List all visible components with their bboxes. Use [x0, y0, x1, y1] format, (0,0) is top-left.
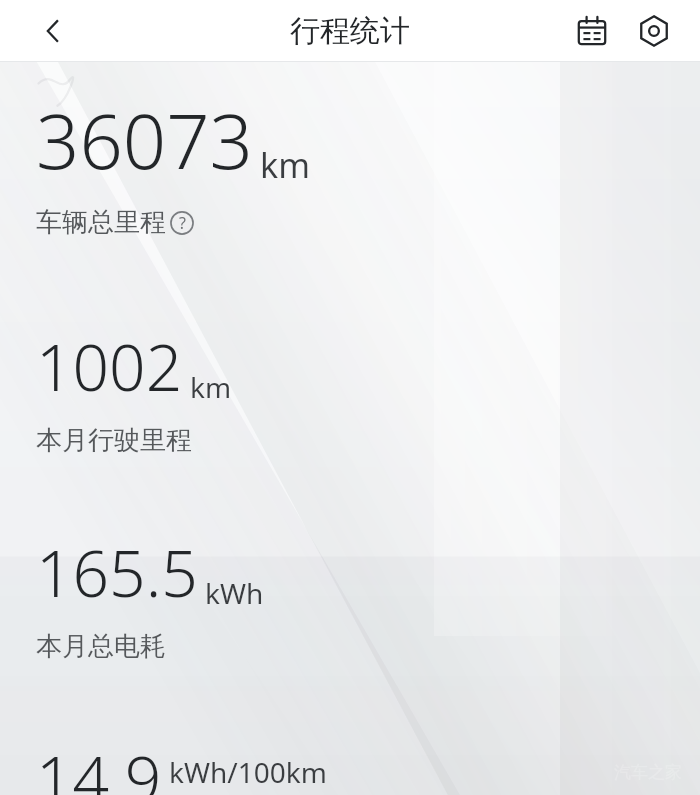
- staticText: 行程统计: [290, 12, 410, 50]
- button[interactable]: 说明: [169, 210, 195, 236]
- staticText: 36073: [36, 88, 253, 192]
- staticText: kWh/100km: [169, 753, 327, 791]
- staticText: kWh: [205, 574, 264, 612]
- staticText: 14.9: [36, 735, 162, 795]
- staticText: 1002: [36, 323, 183, 410]
- button[interactable]: 选择日期: [568, 7, 616, 55]
- staticText: 车辆总里程: [36, 206, 166, 239]
- staticText: km: [260, 142, 310, 188]
- staticText: 本月行驶里程: [36, 424, 192, 457]
- staticText: 本月总电耗: [36, 630, 166, 663]
- staticText: km: [190, 368, 232, 406]
- button[interactable]: 设置: [630, 7, 678, 55]
- button[interactable]: 返回: [30, 8, 76, 54]
- staticText: 165.5: [36, 529, 198, 616]
- staticText: ?: [179, 212, 186, 234]
